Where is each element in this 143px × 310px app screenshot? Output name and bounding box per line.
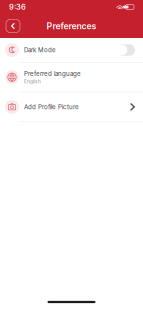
staticText: 9:36 xyxy=(9,2,26,11)
staticText: Preferred language xyxy=(24,70,81,77)
staticText: Add Profile Picture xyxy=(24,103,79,111)
staticText: Dark Mode xyxy=(24,46,56,54)
button[interactable]: Back xyxy=(6,19,20,32)
button[interactable]: Preferred language xyxy=(0,63,143,92)
staticText: Preferences xyxy=(46,21,96,31)
button[interactable]: Add Profile Picture xyxy=(0,92,143,121)
staticText: English xyxy=(24,78,41,84)
button[interactable]: Dark Mode xyxy=(0,38,143,62)
